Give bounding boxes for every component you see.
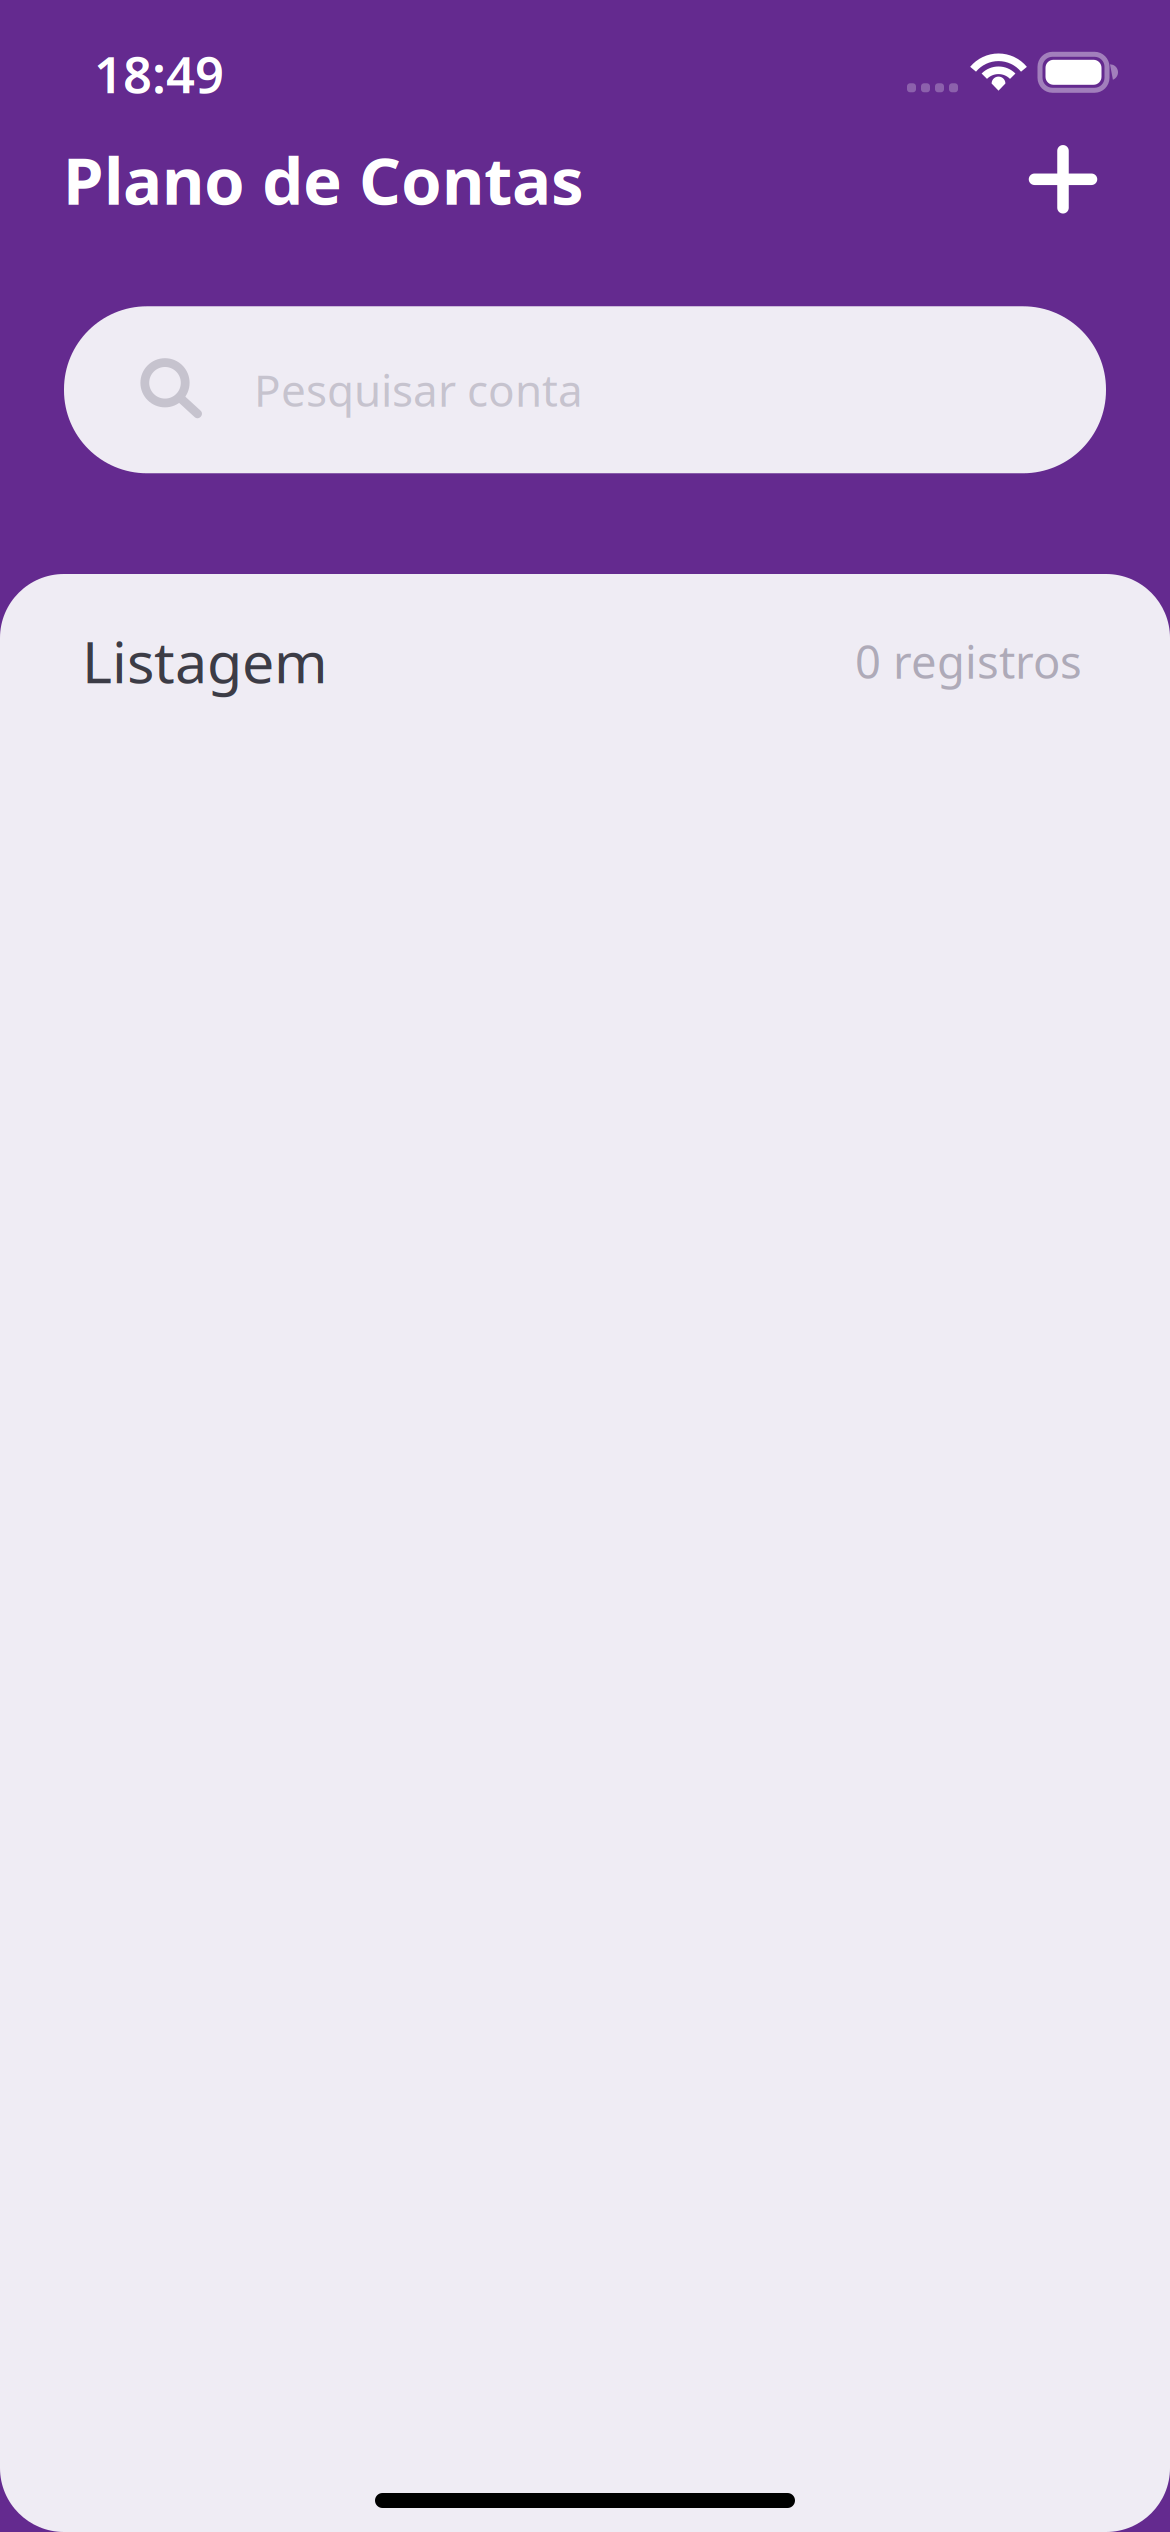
staticText: 0 registros	[855, 631, 1082, 691]
button[interactable]: Adicionar conta	[1007, 123, 1119, 235]
staticText: Pesquisar conta	[254, 361, 583, 419]
staticText: Plano de Contas	[63, 136, 584, 223]
staticText: Listagem	[82, 623, 328, 699]
staticText: 18:49	[94, 40, 224, 107]
